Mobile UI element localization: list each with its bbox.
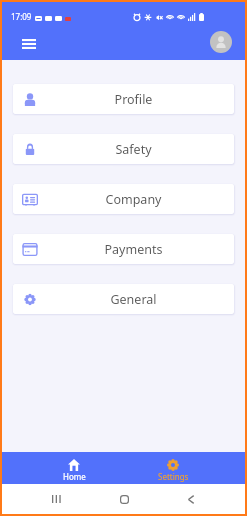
button[interactable]: Account [210,31,232,53]
staticText: Safety [38,141,229,158]
button[interactable]: Home [48,459,100,484]
button[interactable]: Company [13,184,234,214]
staticText: General [38,291,229,308]
staticText: Home [63,471,86,482]
button[interactable]: Safety [13,134,234,164]
button[interactable]: Profile [13,84,234,114]
staticText: Settings [158,471,189,482]
staticText: Profile [38,91,229,108]
staticText: 17:09 [11,11,32,22]
staticText: Payments [38,241,229,258]
button[interactable]: Payments [13,234,234,264]
button[interactable]: Back [180,488,202,510]
button[interactable]: Open navigation menu [18,33,40,55]
button[interactable]: Recent apps [45,488,67,510]
staticText: Company [38,191,229,208]
button[interactable]: General [13,284,234,314]
button[interactable]: Home [113,488,135,510]
button[interactable]: Settings [147,459,199,484]
